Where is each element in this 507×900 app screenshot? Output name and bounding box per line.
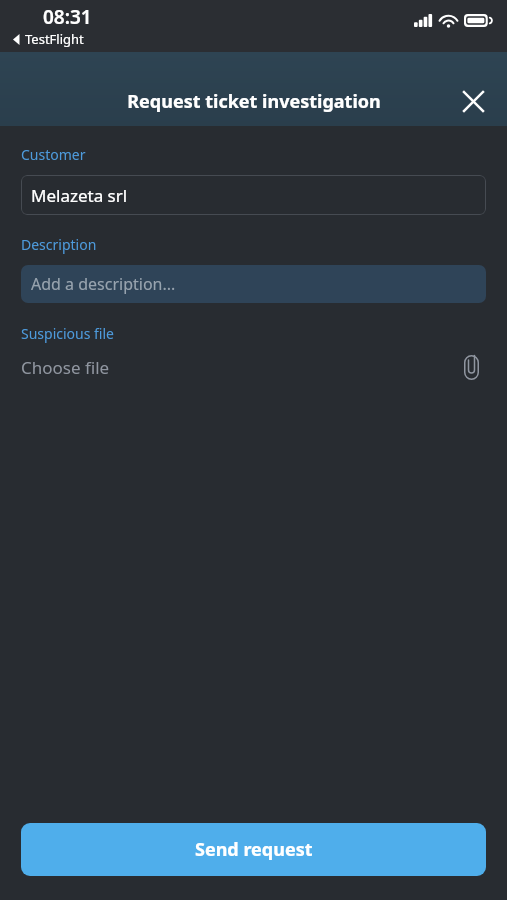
staticText: Add a description... [31,273,176,295]
staticText: Description [21,235,97,254]
button[interactable]: Close [453,81,493,121]
button[interactable]: Send request [21,823,486,876]
staticText: Choose file [21,356,110,379]
staticText: TestFlight [25,30,84,48]
staticText: Send request [195,837,313,862]
button[interactable]: Add a description... [21,265,486,303]
other: Attach file [456,352,486,382]
staticText: Suspicious file [21,324,115,343]
staticText: Melazeta srl [31,184,128,207]
staticText: 08:31 [43,4,92,30]
staticText: Customer [21,145,86,164]
button[interactable]: Melazeta srl [21,175,486,215]
button[interactable]: Choose file [21,349,486,385]
staticText: Request ticket investigation [127,89,381,114]
